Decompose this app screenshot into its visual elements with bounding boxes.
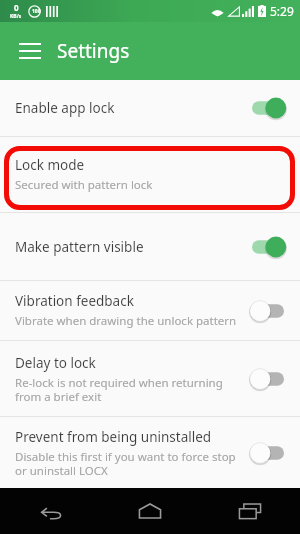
button[interactable]: Prevent from being uninstalled: [0, 417, 300, 488]
button[interactable]: Toggle on: [248, 95, 288, 121]
button[interactable]: Recent apps: [200, 488, 300, 534]
button[interactable]: Toggle off: [248, 440, 288, 466]
staticText: Make pattern visible: [15, 238, 144, 256]
button[interactable]: Toggle on: [248, 234, 288, 260]
button[interactable]: Delay to lock: [0, 341, 300, 416]
staticText: Prevent from being uninstalled: [15, 428, 212, 446]
staticText: Lock mode: [15, 156, 85, 174]
button[interactable]: Back: [0, 488, 100, 534]
staticText: Vibration feedback: [15, 292, 134, 310]
staticText: KB/s: [10, 13, 22, 20]
button[interactable]: Open navigation drawer: [10, 31, 50, 71]
button[interactable]: Enable app lock: [0, 80, 300, 136]
button[interactable]: Home: [100, 488, 200, 534]
staticText: Disable this first if you want to force …: [15, 449, 240, 478]
staticText: 100: [32, 8, 41, 15]
button[interactable]: Make pattern visible: [0, 213, 300, 280]
staticText: 5:29: [270, 3, 294, 19]
staticText: 0: [14, 2, 19, 13]
button[interactable]: Toggle off: [248, 366, 288, 392]
button[interactable]: Toggle off: [248, 298, 288, 324]
staticText: Vibrate when drawing the unlock pattern: [15, 313, 237, 329]
staticText: Enable app lock: [15, 99, 115, 117]
staticText: Re-lock is not required when returning f…: [15, 375, 240, 404]
button[interactable]: Lock mode: [0, 137, 300, 212]
staticText: Delay to lock: [15, 354, 96, 372]
staticText: Settings: [57, 38, 130, 64]
staticText: Secured with pattern lock: [15, 177, 153, 193]
button[interactable]: Vibration feedback: [0, 281, 300, 340]
